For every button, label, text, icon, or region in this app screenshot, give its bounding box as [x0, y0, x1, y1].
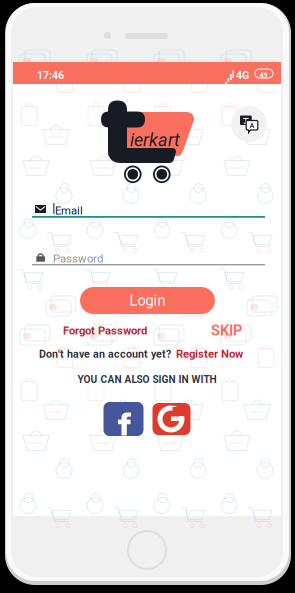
staticText: 17:46: [37, 69, 64, 81]
button[interactable]: Login: [80, 287, 215, 314]
staticText: YOU CAN ALSO SIGN IN WITH: [77, 374, 216, 385]
button[interactable]: Change language: [231, 106, 267, 142]
staticText: ierkart: [130, 129, 180, 151]
button[interactable]: Forgot Password: [63, 324, 147, 337]
button[interactable]: Sign in with Facebook: [103, 402, 143, 436]
staticText: Password: [53, 252, 103, 265]
staticText: Don't have an account yet?: [39, 348, 171, 360]
staticText: 4G: [236, 69, 249, 81]
button[interactable]: Register Now: [176, 347, 243, 361]
staticText: Login: [129, 292, 165, 309]
button[interactable]: Sign in with Google: [152, 403, 190, 435]
staticText: Forgot Password: [63, 324, 147, 337]
staticText: SKIP: [211, 322, 242, 339]
staticText: Email: [55, 204, 83, 217]
staticText: Register Now: [176, 347, 243, 361]
staticText: 49: [259, 71, 267, 79]
button[interactable]: SKIP: [211, 322, 242, 339]
